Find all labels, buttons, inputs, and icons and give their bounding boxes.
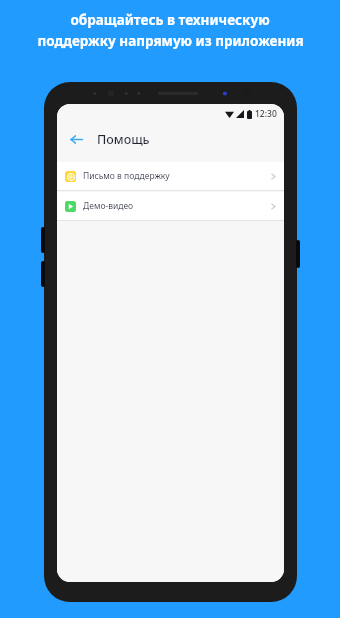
button[interactable]: Демо-видео xyxy=(57,192,284,220)
staticText: 12:30 xyxy=(255,108,277,120)
staticText: Помощь xyxy=(97,131,150,148)
staticText: Письмо в поддержку xyxy=(83,170,271,182)
button[interactable]: Письмо в поддержку xyxy=(57,162,284,190)
staticText: обращайтесь в техническую xyxy=(70,11,270,29)
staticText: Демо-видео xyxy=(83,200,271,212)
staticText: поддержку напрямую из приложения xyxy=(37,32,304,50)
button[interactable]: Назад xyxy=(63,126,89,152)
